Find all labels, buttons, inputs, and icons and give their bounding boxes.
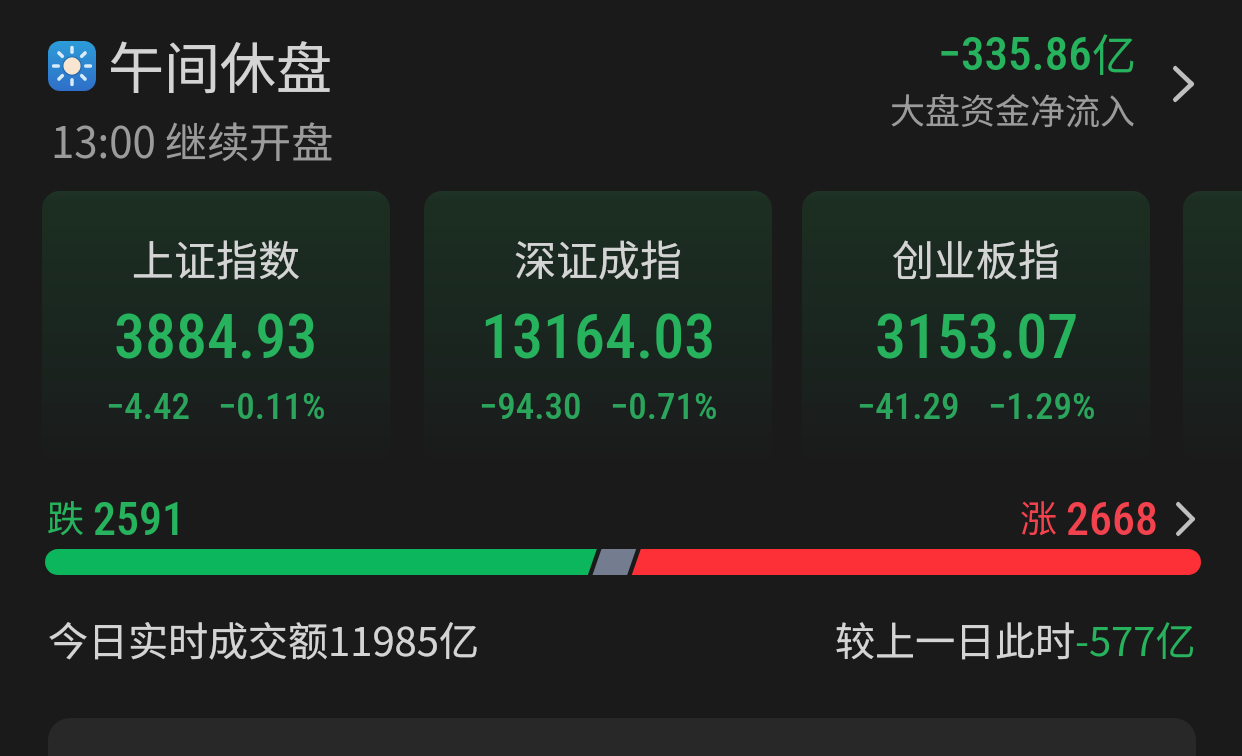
button[interactable]: 上证指数 [42, 191, 390, 463]
button[interactable]: More market breadth [1160, 487, 1211, 551]
staticText: 2591 [93, 492, 185, 546]
staticText: 3884.93 [114, 300, 318, 373]
staticText: −41.29 [857, 385, 960, 428]
staticText: 较上一日此时 [835, 610, 1075, 668]
staticText: 13164.03 [481, 300, 716, 373]
staticText: 今日实时成交额11985亿 [48, 610, 479, 668]
staticText: 13:00 继续开盘 [51, 109, 334, 170]
staticText: 2668 [1066, 492, 1158, 546]
button[interactable]: 跌 [0, 487, 1242, 587]
staticText: −335.86 [938, 26, 1092, 81]
staticText: 亿 [1092, 20, 1136, 84]
staticText: −4.42 [106, 385, 190, 428]
staticText: −0.11% [218, 385, 326, 428]
staticText: 上证指数 [132, 227, 301, 288]
button[interactable]: 深证成指 [424, 191, 772, 463]
button[interactable]: 恒生指数 [1183, 191, 1242, 463]
staticText: 午间休盘 [108, 24, 332, 105]
staticText: −1.29% [988, 385, 1096, 428]
staticText: 创业板指 [892, 227, 1061, 288]
staticText: −94.30 [479, 385, 582, 428]
staticText: −0.71% [610, 385, 718, 428]
button[interactable]: 创业板指 [802, 191, 1150, 463]
staticText: 涨 [1020, 489, 1057, 543]
button[interactable]: −335.86 [0, 0, 1242, 160]
staticText: 深证成指 [514, 227, 683, 288]
button[interactable]: More capital flow [1157, 50, 1210, 118]
staticText: 3153.07 [875, 300, 1079, 373]
staticText: 大盘资金净流入 [890, 83, 1136, 134]
staticText: -577亿 [1075, 610, 1196, 668]
staticText: 跌 [47, 489, 84, 543]
